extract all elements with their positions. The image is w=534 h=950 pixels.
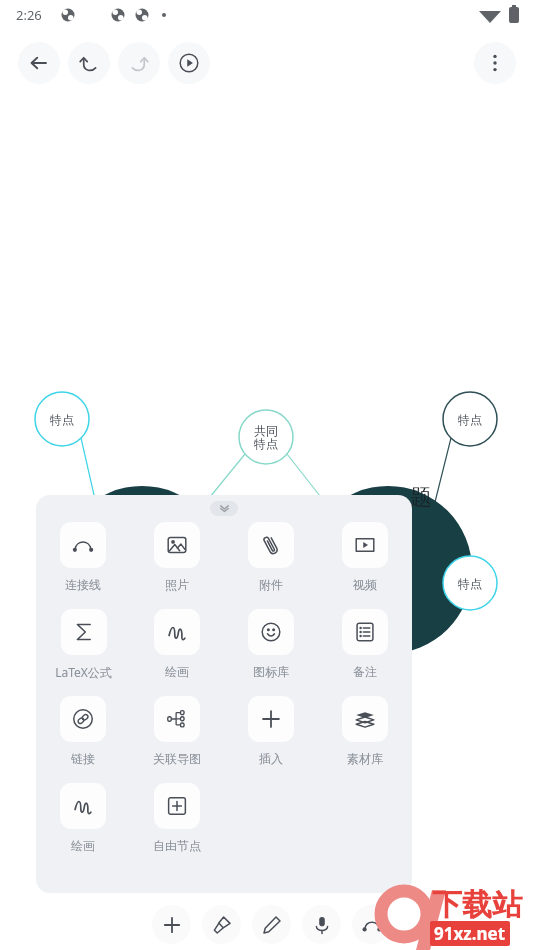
button[interactable]: 图标库 (248, 609, 294, 679)
staticText: 附件 (259, 577, 283, 592)
button[interactable]: Redo (118, 42, 160, 84)
staticText: LaTeX公式 (55, 664, 112, 680)
button[interactable]: 照片 (154, 522, 200, 592)
button[interactable]: Play (168, 42, 210, 84)
button[interactable]: Back (18, 42, 60, 84)
staticText: 插入 (259, 751, 283, 766)
staticText: 绘画 (165, 664, 189, 679)
staticText: 视频 (353, 577, 377, 592)
staticText: 91xz.net (434, 922, 506, 945)
staticText: 共同 特点 (254, 423, 278, 452)
button[interactable]: Voice (302, 905, 341, 944)
staticText: 素材库 (347, 751, 383, 766)
button[interactable]: 附件 (248, 522, 294, 592)
button[interactable]: 插入 (248, 696, 294, 766)
staticText: 备注 (353, 664, 377, 679)
staticText: 照片 (165, 577, 189, 592)
staticText: 特点 (50, 412, 74, 427)
staticText: 特点 (458, 412, 482, 427)
button[interactable]: Style (202, 905, 241, 944)
button[interactable]: Undo (68, 42, 110, 84)
button[interactable]: 素材库 (342, 696, 388, 766)
button[interactable]: More options (474, 42, 516, 84)
button[interactable]: 视频 (342, 522, 388, 592)
button[interactable]: Add (152, 905, 191, 944)
staticText: 绘画 (71, 838, 95, 853)
button[interactable]: 链接 (60, 696, 106, 766)
button[interactable]: 绘画 (154, 609, 200, 679)
staticText: 下载站 (432, 886, 522, 924)
button[interactable]: 备注 (342, 609, 388, 679)
staticText: 关联导图 (153, 751, 201, 766)
staticText: 特点 (458, 576, 482, 591)
staticText: 题 (410, 484, 432, 512)
button[interactable]: Relation (352, 905, 391, 944)
staticText: 链接 (71, 751, 95, 766)
button[interactable]: 连接线 (60, 522, 106, 592)
staticText: 2:26 (16, 6, 42, 24)
button[interactable]: 绘画 (60, 783, 106, 853)
staticText: 自由节点 (153, 838, 201, 853)
button[interactable]: LaTeX公式 (55, 609, 112, 680)
button[interactable]: Collapse (210, 501, 238, 516)
button[interactable]: 关联导图 (153, 696, 201, 766)
button[interactable]: Edit (252, 905, 291, 944)
button[interactable]: 自由节点 (153, 783, 201, 853)
staticText: 图标库 (253, 664, 289, 679)
staticText: 连接线 (65, 577, 101, 592)
